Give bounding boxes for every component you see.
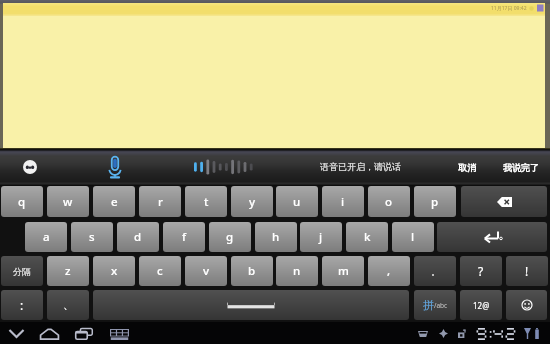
button[interactable]: 取消	[455, 159, 479, 175]
staticText: f	[182, 229, 187, 245]
staticText: :	[20, 297, 24, 313]
button[interactable]: i	[322, 186, 364, 217]
staticText: 11月17日 09:42	[491, 5, 527, 12]
button[interactable]: Delete	[461, 186, 547, 217]
staticText: !	[525, 263, 529, 279]
button[interactable]: l	[392, 222, 434, 252]
staticText: 分隔	[13, 266, 31, 277]
button[interactable]: r	[139, 186, 181, 217]
staticText: 取消	[458, 162, 476, 173]
button[interactable]: Back	[9, 329, 24, 338]
staticText: 。	[431, 266, 440, 277]
staticText: 拼	[423, 298, 434, 312]
button[interactable]: x	[93, 256, 135, 286]
staticText: b	[248, 263, 256, 279]
button[interactable]: 我说完了	[502, 159, 540, 175]
button[interactable]: Switch language	[23, 160, 37, 174]
staticText: k	[364, 229, 371, 245]
staticText: s	[89, 229, 95, 245]
staticText: t	[204, 194, 209, 210]
staticText: q	[18, 194, 26, 210]
button[interactable]: f	[163, 222, 205, 252]
button[interactable]: ?	[460, 256, 502, 286]
staticText: x	[111, 263, 118, 279]
button[interactable]: Microphone	[106, 156, 124, 179]
staticText: j	[319, 229, 323, 245]
button[interactable]: Recent apps	[75, 328, 93, 340]
button[interactable]: Pinyin / abc	[414, 290, 456, 320]
staticText: c	[157, 263, 163, 279]
button[interactable]: d	[117, 222, 159, 252]
staticText: o	[385, 194, 393, 210]
button[interactable]: u	[276, 186, 318, 217]
staticText: /abc	[434, 301, 448, 310]
button[interactable]: y	[231, 186, 273, 217]
staticText: 我说完了	[503, 162, 539, 173]
button[interactable]: c	[139, 256, 181, 286]
staticText: y	[249, 194, 256, 210]
staticText: u	[293, 194, 301, 210]
button[interactable]: h	[255, 222, 297, 252]
button[interactable]: p	[414, 186, 456, 217]
button[interactable]: w	[47, 186, 89, 217]
button[interactable]: Space	[93, 290, 409, 320]
button[interactable]: t	[185, 186, 227, 217]
staticText: 12@	[473, 300, 490, 311]
button[interactable]: z	[47, 256, 89, 286]
staticText: 、	[63, 298, 74, 312]
staticText: l	[411, 229, 415, 245]
button[interactable]: s	[71, 222, 113, 252]
button[interactable]: Enter	[437, 222, 547, 252]
button[interactable]: 分隔	[1, 256, 43, 286]
button[interactable]: ,	[368, 256, 410, 286]
staticText: 语音已开启，请说话	[320, 161, 401, 172]
button[interactable]: j	[300, 222, 342, 252]
button[interactable]: n	[276, 256, 318, 286]
staticText: v	[203, 263, 210, 279]
staticText: g	[226, 229, 234, 245]
button[interactable]: e	[93, 186, 135, 217]
button[interactable]: 12@	[460, 290, 502, 320]
button[interactable]: Keyboard	[110, 329, 129, 340]
button[interactable]: Emoji	[506, 290, 547, 320]
button[interactable]: m	[322, 256, 364, 286]
staticText: d	[134, 229, 142, 245]
button[interactable]: o	[368, 186, 410, 217]
button[interactable]: b	[231, 256, 273, 286]
button[interactable]: q	[1, 186, 43, 217]
staticText: e	[111, 194, 118, 210]
staticText: ,	[387, 263, 391, 279]
button[interactable]: k	[346, 222, 388, 252]
staticText: ?	[478, 263, 484, 279]
button[interactable]: 、	[47, 290, 89, 320]
staticText: p	[431, 194, 439, 210]
button[interactable]: :	[1, 290, 43, 320]
button[interactable]: v	[185, 256, 227, 286]
staticText: i	[341, 194, 345, 210]
staticText: z	[65, 263, 71, 279]
staticText: a	[43, 229, 50, 245]
button[interactable]: a	[25, 222, 67, 252]
button[interactable]: !	[506, 256, 548, 286]
staticText: w	[63, 194, 73, 210]
staticText: h	[272, 229, 280, 245]
staticText: m	[338, 263, 349, 279]
button[interactable]: g	[209, 222, 251, 252]
button[interactable]: Home	[40, 328, 59, 340]
button[interactable]: 。	[414, 256, 456, 286]
staticText: n	[293, 263, 301, 279]
staticText: r	[158, 194, 163, 210]
